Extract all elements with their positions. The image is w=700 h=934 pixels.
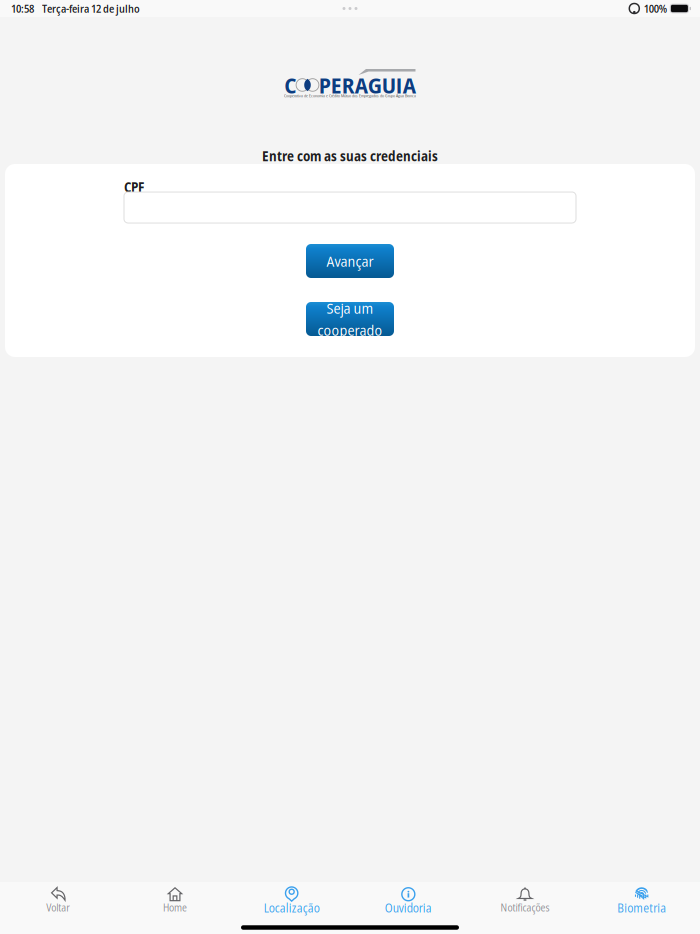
staticText: Entre com as suas credenciais bbox=[262, 147, 438, 165]
staticText: Voltar bbox=[46, 901, 70, 915]
button[interactable]: Ouvidoria bbox=[350, 877, 467, 917]
staticText: Terça-feira 12 de julho bbox=[42, 1, 140, 16]
staticText: 10:58 bbox=[11, 1, 34, 16]
staticText: C bbox=[284, 70, 296, 100]
button[interactable]: Localização bbox=[233, 877, 350, 917]
button[interactable]: Seja um bbox=[306, 302, 394, 336]
staticText: Seja um bbox=[326, 298, 373, 318]
staticText: Notificações bbox=[500, 901, 549, 915]
staticText: 100% bbox=[644, 1, 667, 16]
button[interactable]: Avançar bbox=[306, 244, 394, 278]
button[interactable]: Voltar bbox=[0, 877, 117, 917]
button[interactable]: Home bbox=[117, 877, 233, 917]
staticText: CPF bbox=[124, 178, 144, 196]
staticText: Avançar bbox=[326, 251, 373, 271]
staticText: Cooperativa de Economia e Crédito Mútuo … bbox=[284, 93, 416, 98]
staticText: Ouvidoria bbox=[385, 900, 432, 916]
staticText: cooperado bbox=[317, 320, 382, 340]
staticText: Home bbox=[163, 901, 187, 915]
button[interactable]: Notificações bbox=[467, 877, 583, 917]
button[interactable]: Biometria bbox=[583, 877, 700, 917]
staticText: Biometria bbox=[617, 900, 666, 916]
staticText: Localização bbox=[264, 900, 320, 916]
staticText: PERAGUIA bbox=[319, 70, 416, 100]
